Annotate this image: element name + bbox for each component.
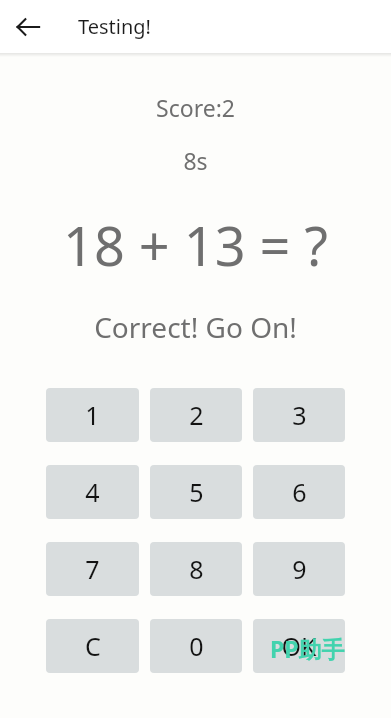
staticText: 18 + 13 = ? (46, 208, 345, 282)
staticText: 3 (292, 398, 307, 432)
staticText: 0 (189, 629, 204, 663)
staticText: 1 (85, 398, 100, 432)
staticText: Testing! (78, 13, 151, 40)
button[interactable]: 8 (150, 542, 242, 596)
button[interactable]: 6 (253, 465, 345, 519)
button[interactable]: 9 (253, 542, 345, 596)
button[interactable]: 2 (150, 388, 242, 442)
staticText: 4 (85, 475, 100, 509)
staticText: C (85, 629, 101, 663)
staticText: Correct! Go On! (46, 308, 345, 346)
button[interactable]: Back (12, 11, 44, 43)
button[interactable]: C (46, 619, 139, 673)
staticText: 9 (292, 552, 307, 586)
staticText: Score:2 (46, 92, 345, 123)
staticText: OK (281, 629, 317, 663)
staticText: PP助手 (270, 633, 345, 664)
button[interactable]: 3 (253, 388, 345, 442)
button[interactable]: 0 (150, 619, 242, 673)
button[interactable]: 1 (46, 388, 139, 442)
staticText: 2 (189, 398, 204, 432)
button[interactable]: OK (253, 619, 345, 673)
staticText: 8s (46, 145, 345, 176)
button[interactable]: 5 (150, 465, 242, 519)
staticText: 8 (189, 552, 204, 586)
staticText: 6 (292, 475, 307, 509)
button[interactable]: 4 (46, 465, 139, 519)
staticText: 5 (189, 475, 204, 509)
staticText: 7 (85, 552, 100, 586)
button[interactable]: 7 (46, 542, 139, 596)
